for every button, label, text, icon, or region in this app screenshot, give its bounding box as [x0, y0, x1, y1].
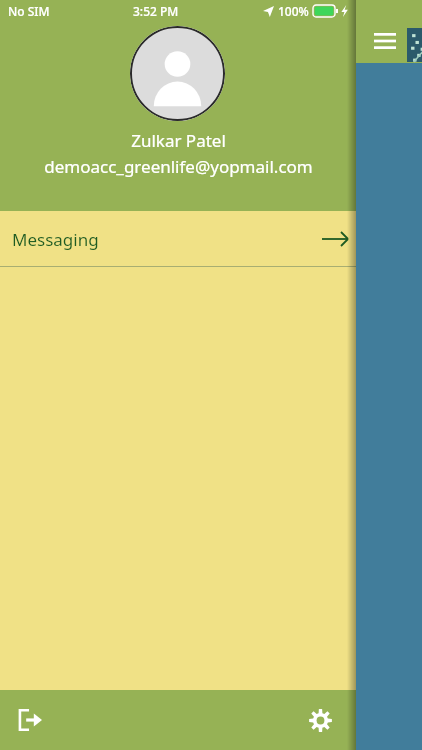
button[interactable]: Messaging: [0, 211, 356, 267]
staticText: Messaging: [12, 228, 99, 251]
button[interactable]: Log out: [8, 698, 52, 742]
staticText: 100%: [278, 3, 309, 19]
button[interactable]: Photo: [407, 28, 422, 62]
staticText: 3:52 PM: [133, 3, 179, 19]
button[interactable]: Open navigation menu: [370, 28, 400, 54]
button[interactable]: Settings: [298, 698, 342, 742]
button[interactable]: Profile photo: [130, 26, 225, 121]
staticText: Zulkar Patel: [131, 129, 226, 152]
staticText: demoacc_greenlife@yopmail.com: [44, 155, 313, 178]
staticText: No SIM: [8, 3, 50, 19]
